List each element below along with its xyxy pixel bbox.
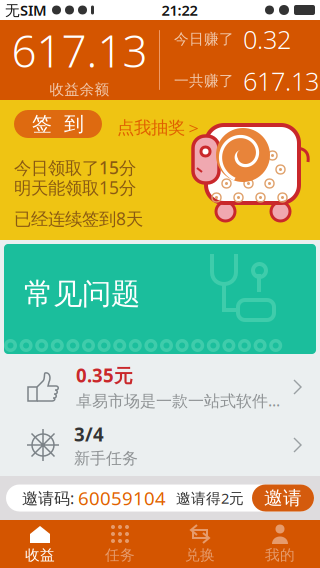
staticText: 我的 bbox=[265, 546, 295, 564]
staticText: 3/4 bbox=[74, 422, 104, 447]
staticText: 邀请得2元 bbox=[176, 488, 244, 508]
button[interactable]: 我的 bbox=[240, 520, 320, 568]
button[interactable]: 点我抽奖＞ bbox=[117, 117, 202, 138]
staticText: 常见问题 bbox=[24, 276, 140, 312]
staticText: 任务 bbox=[105, 546, 135, 564]
staticText: 新手任务 bbox=[74, 449, 138, 468]
staticText: 0.35元 bbox=[76, 363, 133, 388]
staticText: 兑换 bbox=[185, 546, 215, 564]
staticText: 卓易市场是一款一站式软件管理平台… bbox=[76, 390, 285, 411]
staticText: 邀请 bbox=[264, 486, 302, 509]
staticText: 今日领取了15分 bbox=[14, 156, 136, 179]
staticText: 今日赚了 bbox=[174, 30, 234, 48]
staticText: 无SIM bbox=[5, 0, 47, 20]
staticText: 收益 bbox=[25, 546, 55, 564]
staticText: 60059104 bbox=[78, 486, 166, 510]
staticText: 一共赚了 bbox=[174, 72, 234, 90]
staticText: 21:22 bbox=[161, 0, 197, 20]
staticText: 收益余额 bbox=[49, 81, 109, 99]
button[interactable]: 0.35元 bbox=[0, 358, 320, 416]
button[interactable]: 兑换 bbox=[160, 520, 240, 568]
button[interactable]: 邀请 bbox=[252, 484, 314, 511]
staticText: 点我抽奖＞ bbox=[117, 117, 202, 138]
staticText: 签 到 bbox=[32, 112, 84, 136]
staticText: 617.13 bbox=[11, 21, 147, 80]
staticText: 邀请码: bbox=[22, 487, 74, 509]
staticText: 已经连续签到8天 bbox=[14, 207, 143, 230]
button[interactable]: 任务 bbox=[80, 520, 160, 568]
staticText: 617.13 bbox=[243, 64, 319, 98]
button[interactable]: 3/4 bbox=[0, 416, 320, 474]
staticText: 0.32 bbox=[243, 22, 291, 56]
button[interactable]: 常见问题 bbox=[0, 244, 320, 354]
button[interactable]: 收益 bbox=[0, 520, 80, 568]
staticText: 明天能领取15分 bbox=[14, 176, 136, 199]
button[interactable]: 签 到 bbox=[14, 110, 102, 138]
